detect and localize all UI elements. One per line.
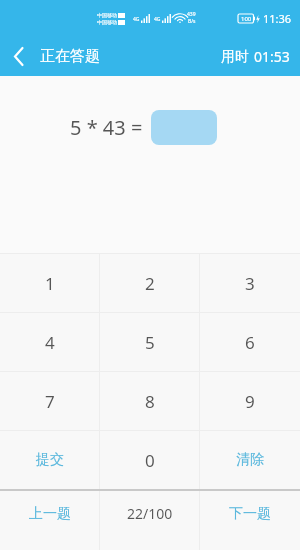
staticText: 用时 [221,48,249,66]
button[interactable]: 2 [100,254,200,312]
staticText: 上一题 [29,505,71,523]
staticText: 22/100 [127,504,173,523]
staticText: 下一题 [229,505,271,523]
button[interactable]: 7 [0,372,100,430]
staticText: 100 [241,15,252,23]
staticText: 01:53 [254,47,290,66]
button[interactable] [151,110,217,145]
button[interactable]: 清除 [200,431,300,489]
staticText: 8 [145,390,155,413]
button[interactable]: 1 [0,254,100,312]
staticText: 中国移动 [97,12,117,18]
staticText: 提交 [36,451,64,469]
staticText: 0 [145,449,155,472]
staticText: 清除 [236,451,264,469]
staticText: 5 [145,331,155,354]
button[interactable]: 22/100 [100,491,200,550]
button[interactable]: 5 [100,313,200,371]
staticText: B/s [188,18,196,25]
staticText: 中国移动 [97,19,117,25]
staticText: 9 [245,390,255,413]
staticText: 6 [245,331,255,354]
button[interactable]: 上一题 [0,491,100,550]
staticText: 1 [45,272,55,295]
staticText: 11:36 [263,11,292,26]
button[interactable]: 9 [200,372,300,430]
staticText: 2 [145,272,155,295]
button[interactable]: 下一题 [200,491,300,550]
staticText: 439 [187,11,196,18]
staticText: 正在答题 [40,47,100,66]
button[interactable]: 4 [0,313,100,371]
staticText: 4 [45,331,55,354]
button[interactable]: 8 [100,372,200,430]
staticText: 4G [154,16,161,23]
button[interactable]: 提交 [0,431,100,489]
button[interactable]: 3 [200,254,300,312]
button[interactable]: 6 [200,313,300,371]
button[interactable]: 0 [100,431,200,489]
staticText: 7 [45,390,55,413]
staticText: 4G [133,16,140,23]
staticText: 5 * 43 = [70,114,143,141]
staticText: 3 [245,272,255,295]
button[interactable]: Back [0,40,38,73]
